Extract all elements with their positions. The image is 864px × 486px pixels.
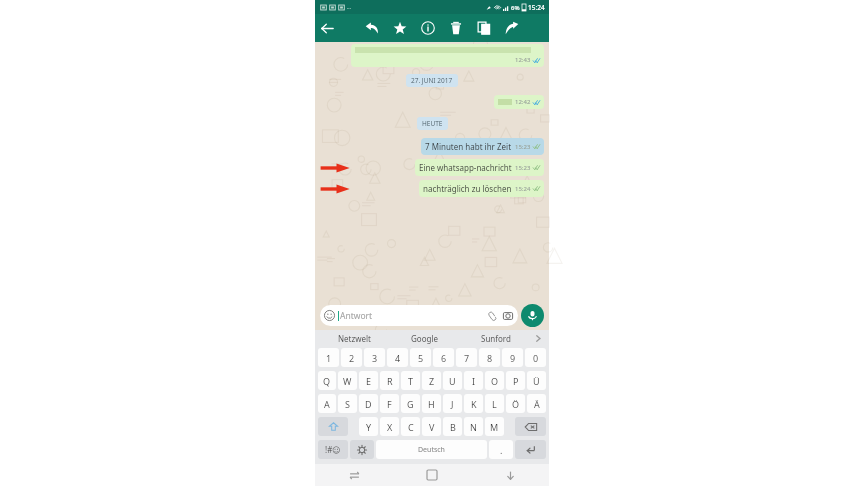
button[interactable]: M [485, 417, 504, 436]
button[interactable]: J [443, 394, 462, 413]
button[interactable]: Y [359, 417, 378, 436]
button[interactable]: D [359, 394, 378, 413]
button[interactable]: Reply [361, 17, 383, 39]
staticText: J [451, 398, 454, 410]
button[interactable]: 3 [364, 348, 385, 367]
button[interactable]: 1 [318, 348, 339, 367]
staticText: U [449, 375, 456, 387]
button[interactable]: A [318, 394, 336, 413]
button[interactable]: 0 [525, 348, 546, 367]
button[interactable]: Enter [515, 440, 546, 459]
button[interactable]: Ö [506, 394, 525, 413]
staticText: G [407, 398, 414, 410]
staticText: C [408, 421, 414, 433]
button[interactable]: Eine whatsapp-nachricht [415, 159, 544, 176]
staticText: R [387, 375, 393, 387]
button[interactable]: nachträglich zu löschen [419, 180, 544, 197]
button[interactable]: 7 Minuten habt ihr Zeit [421, 138, 544, 155]
button[interactable]: F [380, 394, 399, 413]
staticText: 12:42 [515, 98, 531, 106]
staticText: 15:23 [515, 143, 531, 151]
staticText: A [324, 398, 330, 410]
button[interactable]: . [489, 440, 513, 459]
staticText: D [365, 398, 372, 410]
button[interactable]: L [485, 394, 504, 413]
staticText: Antwort [340, 310, 373, 322]
staticText: nachträglich zu löschen [423, 183, 512, 194]
staticText: 1 [326, 352, 332, 364]
button[interactable]: V [422, 417, 441, 436]
staticText: !#☺ [325, 444, 341, 455]
button[interactable]: Delete [445, 17, 467, 39]
staticText: 3 [372, 352, 378, 364]
button[interactable]: !#☺ [318, 440, 348, 459]
button[interactable]: Backspace [515, 417, 546, 436]
staticText: 15:23 [515, 164, 531, 172]
button[interactable]: 4 [387, 348, 408, 367]
staticText: E [366, 375, 372, 387]
staticText: 15:24 [528, 3, 545, 12]
button[interactable]: Ä [527, 394, 546, 413]
button[interactable]: 2 [341, 348, 362, 367]
staticText: Ö [512, 398, 520, 410]
staticText: 27. JUNI 2017 [411, 76, 453, 85]
button[interactable]: H [422, 394, 441, 413]
button[interactable]: Recents [315, 464, 393, 486]
button[interactable]: Google [389, 330, 460, 346]
staticText: 15:24 [515, 185, 531, 193]
staticText: Y [366, 421, 372, 433]
staticText: T [408, 375, 414, 387]
button[interactable]: Q [318, 371, 336, 390]
button[interactable]: Info [417, 17, 439, 39]
button[interactable]: Back [315, 16, 339, 40]
staticText: 5 [418, 352, 424, 364]
button[interactable]: Settings [350, 440, 374, 459]
button[interactable]: Z [422, 371, 441, 390]
button[interactable]: Voice message [521, 304, 544, 327]
button[interactable]: K [464, 394, 483, 413]
button[interactable]: Deutsch [376, 440, 487, 459]
button[interactable]: Netzwelt [319, 330, 389, 346]
button[interactable]: G [401, 394, 420, 413]
staticText: Q [323, 375, 331, 387]
button[interactable]: Shift [318, 417, 348, 436]
staticText: P [513, 375, 519, 387]
button[interactable]: E [359, 371, 378, 390]
button[interactable]: P [506, 371, 525, 390]
button[interactable]: U [443, 371, 462, 390]
button[interactable]: 12:42 [494, 95, 544, 109]
button[interactable]: B [443, 417, 462, 436]
button[interactable]: Forward [501, 17, 523, 39]
button[interactable]: Attach [486, 310, 498, 322]
button[interactable]: W [338, 371, 357, 390]
button[interactable]: Home [393, 464, 471, 486]
staticText: W [343, 375, 352, 387]
button[interactable]: 7 [456, 348, 477, 367]
button[interactable]: Antwort [320, 305, 518, 326]
staticText: Ü [533, 375, 540, 387]
button[interactable]: 9 [502, 348, 523, 367]
button[interactable]: Sunford [460, 330, 531, 346]
button[interactable]: 8 [479, 348, 500, 367]
button[interactable]: R [380, 371, 399, 390]
button[interactable]: X [380, 417, 399, 436]
button[interactable]: Star [389, 17, 411, 39]
button[interactable]: T [401, 371, 420, 390]
staticText: 8 [487, 352, 493, 364]
button[interactable]: I [464, 371, 483, 390]
button[interactable]: S [338, 394, 357, 413]
button[interactable]: O [485, 371, 504, 390]
button[interactable]: N [464, 417, 483, 436]
button[interactable]: 6 [433, 348, 454, 367]
button[interactable]: More suggestions [531, 330, 545, 346]
button[interactable]: 5 [410, 348, 431, 367]
button[interactable]: Hide keyboard [471, 464, 549, 486]
button[interactable]: Copy [473, 17, 495, 39]
button[interactable]: 12:43 [351, 44, 544, 67]
staticText: Deutsch [418, 445, 445, 455]
button[interactable]: C [401, 417, 420, 436]
staticText: 2 [349, 352, 355, 364]
button[interactable]: Ü [527, 371, 546, 390]
staticText: O [491, 375, 499, 387]
button[interactable]: Camera [502, 310, 514, 322]
